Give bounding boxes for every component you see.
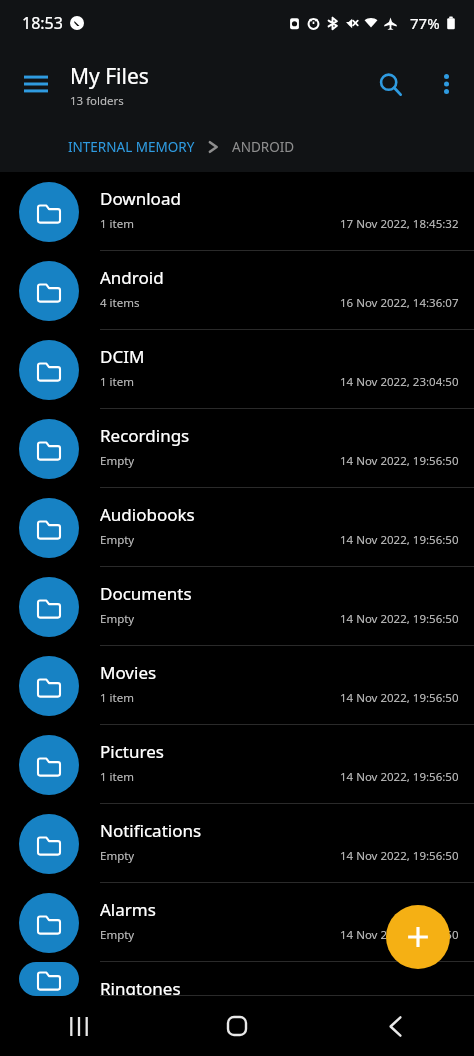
staticText: 18:53 [22, 12, 63, 34]
staticText: 14 Nov 2022, 19:56:50 [340, 927, 459, 943]
staticText: 1 item [100, 216, 134, 232]
staticText: Audiobooks [100, 503, 195, 526]
staticText: Download [100, 187, 181, 210]
button[interactable]: Movies [0, 646, 474, 725]
staticText: Empty [100, 453, 135, 469]
button[interactable]: Documents [0, 567, 474, 646]
button[interactable]: Android [0, 251, 474, 330]
button[interactable]: Alarms [0, 883, 474, 962]
staticText: Alarms [100, 898, 156, 921]
button[interactable]: Pictures [0, 725, 474, 804]
button[interactable]: ANDROID [232, 138, 295, 156]
staticText: 77% [410, 13, 440, 33]
staticText: Empty [100, 848, 135, 864]
staticText: Ringtones [100, 977, 181, 996]
button[interactable]: Recent apps [0, 996, 158, 1056]
button[interactable]: Search [366, 60, 414, 108]
button[interactable]: Audiobooks [0, 488, 474, 567]
staticText: Android [100, 266, 164, 289]
staticText: Pictures [100, 740, 164, 763]
staticText: My Files [70, 62, 149, 91]
button[interactable]: Notifications [0, 804, 474, 883]
button[interactable]: INTERNAL MEMORY [68, 138, 195, 156]
staticText: 14 Nov 2022, 19:56:50 [340, 611, 459, 627]
staticText: 13 folders [70, 93, 124, 109]
staticText: 14 Nov 2022, 19:56:50 [340, 453, 459, 469]
staticText: Empty [100, 611, 135, 627]
staticText: 1 item [100, 769, 134, 785]
staticText: 14 Nov 2022, 19:56:50 [340, 769, 459, 785]
staticText: Recordings [100, 424, 190, 447]
button[interactable]: Download [0, 172, 474, 251]
staticText: Notifications [100, 819, 202, 842]
staticText: 17 Nov 2022, 18:45:32 [340, 216, 459, 232]
staticText: ANDROID [232, 138, 295, 156]
button[interactable]: More options [424, 62, 468, 106]
staticText: 1 item [100, 374, 134, 390]
staticText: Documents [100, 582, 192, 605]
staticText: 1 item [100, 690, 134, 706]
staticText: 14 Nov 2022, 19:56:50 [340, 532, 459, 548]
staticText: 14 Nov 2022, 23:04:50 [340, 374, 459, 390]
button[interactable]: Create new folder [386, 905, 450, 969]
button[interactable]: Open navigation drawer [12, 60, 60, 108]
staticText: 14 Nov 2022, 19:56:50 [340, 690, 459, 706]
button[interactable]: Recordings [0, 409, 474, 488]
button[interactable]: Back [316, 996, 474, 1056]
staticText: INTERNAL MEMORY [68, 138, 195, 156]
staticText: 16 Nov 2022, 14:36:07 [340, 295, 459, 311]
staticText: 14 Nov 2022, 19:56:50 [340, 848, 459, 864]
staticText: Empty [100, 532, 135, 548]
button[interactable]: DCIM [0, 330, 474, 409]
staticText: 4 items [100, 295, 140, 311]
staticText: Empty [100, 927, 135, 943]
staticText: DCIM [100, 345, 145, 368]
button[interactable]: Home [158, 996, 316, 1056]
button[interactable]: Ringtones [0, 962, 474, 996]
staticText: Movies [100, 661, 157, 684]
